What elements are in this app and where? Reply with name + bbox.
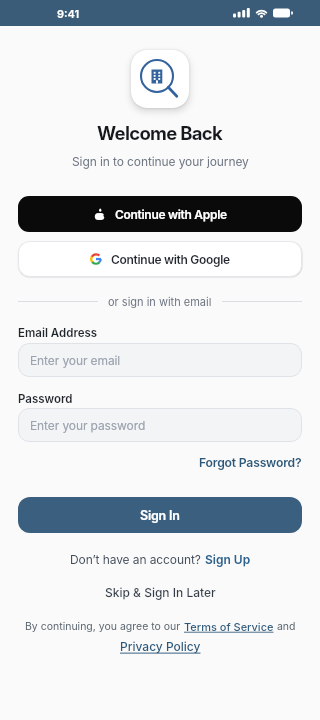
staticText: and — [274, 620, 296, 633]
staticText: Sign in to continue your journey — [72, 154, 249, 169]
button[interactable]: Sign In — [18, 497, 302, 533]
staticText: By continuing, you agree to our — [25, 620, 184, 633]
staticText: Enter your email — [30, 353, 121, 368]
staticText: Welcome Back — [97, 122, 223, 144]
button[interactable]: Terms of Service — [184, 620, 274, 633]
button[interactable]: Sign Up — [205, 552, 251, 567]
button[interactable]: Enter your email — [18, 343, 302, 377]
button[interactable]: Forgot Password? — [199, 455, 302, 470]
button[interactable]: Continue with Google — [18, 241, 302, 277]
button[interactable]: Enter your password — [18, 408, 302, 442]
staticText: Enter your password — [30, 418, 146, 433]
button[interactable]: Privacy Policy — [120, 639, 201, 654]
staticText: Terms of Service — [184, 620, 274, 633]
staticText: Skip & Sign In Later — [105, 585, 216, 600]
staticText: Password — [18, 392, 73, 406]
staticText: Don’t have an account? — [70, 552, 205, 567]
staticText: Forgot Password? — [199, 455, 302, 470]
staticText: Sign Up — [205, 552, 251, 567]
staticText: 9:41 — [57, 7, 80, 20]
staticText: Continue with Google — [111, 252, 230, 267]
staticText: Continue with Apple — [115, 207, 227, 222]
staticText: or sign in with email — [108, 295, 212, 308]
button[interactable]: Skip & Sign In Later — [105, 585, 216, 600]
staticText: Sign In — [140, 508, 180, 523]
staticText: Privacy Policy — [120, 639, 201, 654]
button[interactable]: Continue with Apple — [18, 196, 302, 232]
staticText: Email Address — [18, 326, 98, 340]
